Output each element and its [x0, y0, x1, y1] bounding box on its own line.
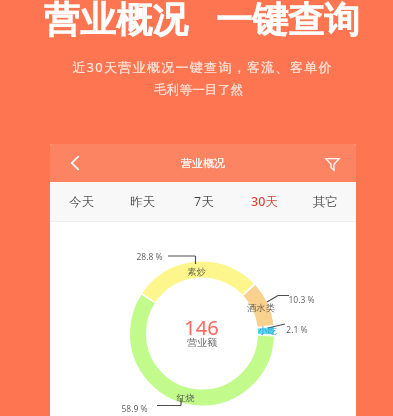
button[interactable]: 其它 [295, 182, 356, 221]
staticText: 素炒 [187, 266, 206, 278]
staticText: 毛利等一目了然 [154, 82, 243, 98]
staticText: 今天 [69, 194, 94, 210]
button[interactable]: 7天 [173, 182, 234, 221]
staticText: 营业额 [187, 336, 217, 349]
button[interactable]: 今天 [50, 182, 112, 221]
staticText: 其它 [313, 194, 338, 210]
staticText: 红烧 [176, 392, 195, 404]
staticText: 7天 [194, 193, 214, 210]
staticText: 小吃 [258, 325, 277, 337]
staticText: 146 [184, 314, 219, 341]
staticText: 10.3 % [288, 294, 315, 306]
staticText: 30天 [251, 193, 278, 210]
staticText: 营业概况 [44, 0, 188, 42]
button[interactable]: 30天 [234, 182, 295, 221]
staticText: 近30天营业概况一键查询，客流、客单价 [72, 58, 333, 76]
staticText: 2.1 % [286, 324, 308, 336]
staticText: 酒水类 [247, 302, 275, 314]
button[interactable]: Back [63, 151, 87, 175]
staticText: 营业概况 [181, 156, 225, 170]
staticText: 28.8 % [136, 251, 163, 263]
staticText: 58.9 % [121, 403, 148, 415]
button[interactable]: Filter [321, 152, 343, 174]
button[interactable]: 昨天 [112, 182, 173, 221]
staticText: 一键查询 [216, 0, 360, 42]
staticText: 昨天 [130, 194, 155, 210]
